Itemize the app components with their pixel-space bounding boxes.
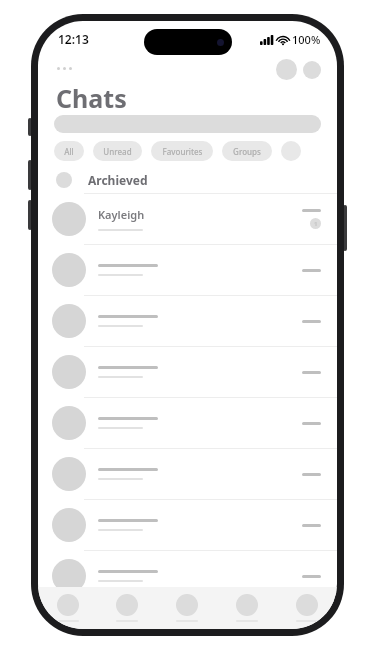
staticText: 1 [314,220,318,228]
button[interactable]: Camera [276,59,297,80]
button[interactable]: Groups [222,141,272,161]
button[interactable] [38,397,337,448]
button[interactable]: Settings [277,587,337,629]
button[interactable] [38,295,337,346]
button[interactable]: Status [38,587,97,629]
button[interactable] [38,244,337,295]
button[interactable] [38,499,337,550]
button[interactable]: All [54,141,84,161]
button[interactable]: Search [54,115,321,133]
staticText: 100% [292,32,321,47]
button[interactable] [38,448,337,499]
staticText: All [64,146,74,157]
button[interactable]: Communities [157,587,217,629]
button[interactable] [38,346,337,397]
staticText: Kayleigh [98,207,145,222]
button[interactable]: Unread [93,141,142,161]
button[interactable]: Kayleigh [38,193,337,244]
staticText: Groups [233,146,261,157]
button[interactable]: More filters [281,141,301,161]
button[interactable]: Calls [97,587,157,629]
staticText: Unread [103,146,132,157]
staticText: 12:13 [58,31,89,47]
staticText: Archieved [88,172,148,188]
button[interactable] [38,550,337,601]
button[interactable]: Favourites [151,141,213,161]
staticText: Favourites [162,146,203,157]
staticText: Chats [56,81,127,115]
button[interactable]: Chats [217,587,277,629]
button[interactable]: New chat [303,61,321,79]
button[interactable]: Archieved [38,167,337,193]
